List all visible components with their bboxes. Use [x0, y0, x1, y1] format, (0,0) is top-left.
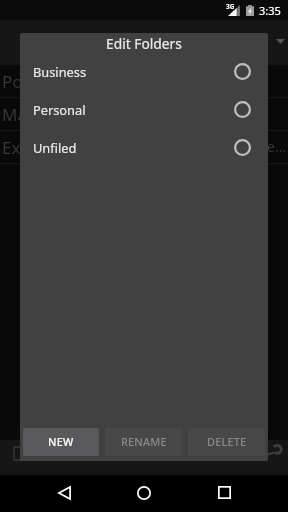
staticText: Possible duplicates [2, 70, 154, 93]
button[interactable]: Home [120, 475, 168, 512]
staticText: 3:35 [259, 3, 281, 18]
button[interactable]: Unfiled [20, 128, 268, 166]
button[interactable]: Recents [200, 475, 248, 512]
button[interactable]: RENAME [105, 428, 182, 456]
staticText: Business [33, 63, 87, 80]
button[interactable]: Business [20, 52, 268, 90]
staticText: e… [267, 137, 286, 156]
staticText: Personal [33, 101, 86, 118]
staticText: Manage storage [2, 103, 133, 126]
staticText: Export note [2, 136, 96, 159]
staticText: Unfiled [33, 139, 77, 156]
staticText: NEW [48, 434, 74, 449]
button[interactable]: Back [40, 475, 88, 512]
button[interactable]: NEW [23, 428, 99, 456]
staticText: DELETE [207, 434, 247, 449]
button[interactable]: DELETE [188, 428, 265, 456]
staticText: 3G [226, 2, 235, 11]
staticText: RENAME [121, 434, 167, 449]
staticText: Edit Folders [106, 34, 182, 53]
button[interactable]: Personal [20, 90, 268, 128]
